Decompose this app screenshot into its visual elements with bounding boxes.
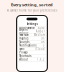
staticText: Text size <box>19 33 29 37</box>
staticText: Privacy <box>19 51 27 54</box>
button[interactable]: Accent colour <box>17 30 47 33</box>
staticText: A calmer home for your preferences <box>7 9 57 12</box>
staticText: Sounds <box>19 40 29 44</box>
staticText: Haptics <box>19 37 28 40</box>
staticText: iCloud <box>35 47 45 51</box>
button[interactable]: Haptics <box>17 37 47 40</box>
button[interactable]: Notifications <box>17 44 47 47</box>
staticText: Sync <box>19 47 24 51</box>
staticText: About <box>19 58 28 61</box>
button[interactable]: Shortcuts <box>17 54 47 58</box>
staticText: On <box>41 37 45 40</box>
button[interactable]: Privacy <box>17 51 47 54</box>
staticText: Medium <box>34 33 45 37</box>
button[interactable]: Appearance <box>17 26 47 30</box>
staticText: 1.4.2 <box>37 58 45 61</box>
button[interactable]: About <box>17 58 47 61</box>
staticText: Settings <box>26 22 37 26</box>
staticText: On <box>41 40 45 44</box>
staticText: Shortcuts <box>19 54 31 58</box>
button[interactable]: Text size <box>17 33 47 37</box>
staticText: Notifications <box>19 44 36 47</box>
staticText: Auto <box>38 26 45 30</box>
staticText: 3 <box>43 44 45 47</box>
staticText: Every setting, sorted <box>11 2 53 7</box>
staticText: Amber <box>36 30 45 33</box>
button[interactable]: Sounds <box>17 40 47 44</box>
button[interactable]: Sync <box>17 47 47 51</box>
staticText: Appearance <box>19 26 35 30</box>
staticText: Accent colour <box>19 28 28 35</box>
